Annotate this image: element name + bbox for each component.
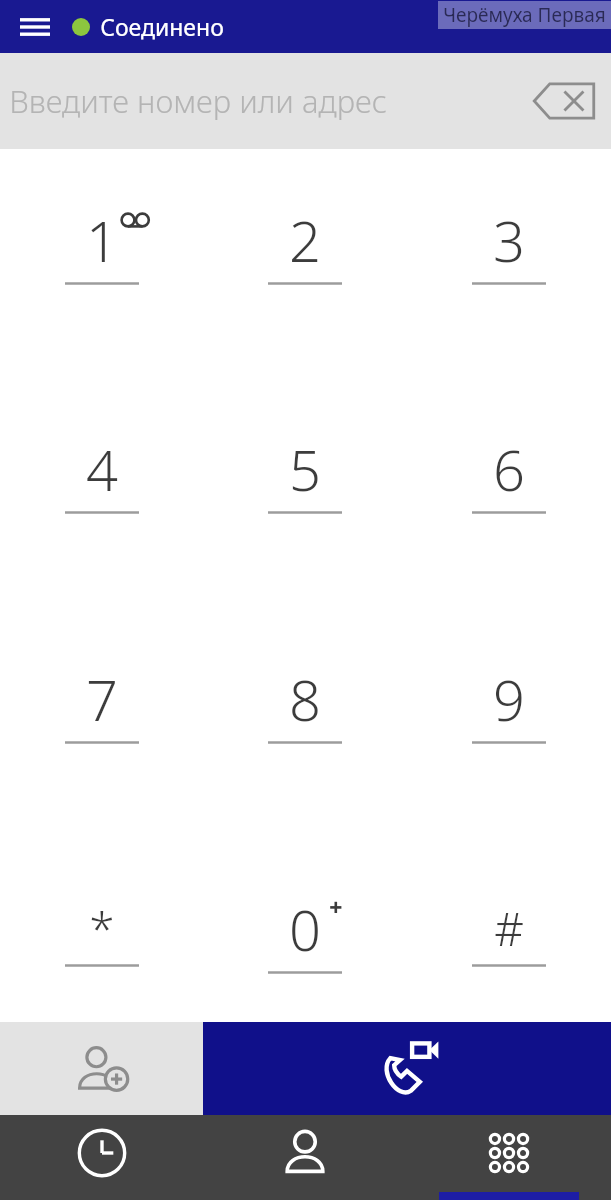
button[interactable]: 5	[203, 420, 407, 524]
staticText: 0	[289, 891, 321, 967]
button[interactable]: Backspace	[523, 70, 605, 132]
staticText: 5	[289, 431, 321, 507]
staticText: Соединено	[100, 11, 224, 42]
button[interactable]: 4	[0, 420, 203, 524]
button[interactable]: 8	[203, 650, 407, 754]
staticText: *	[89, 897, 115, 960]
button[interactable]: 3	[407, 191, 611, 295]
button[interactable]: Contacts	[203, 1115, 407, 1200]
button[interactable]: Video call	[203, 1022, 611, 1115]
button[interactable]: 6	[407, 420, 611, 524]
staticText: Черёмуха Первая	[443, 2, 606, 28]
staticText: 1	[86, 202, 118, 278]
staticText: 2	[289, 202, 321, 278]
button[interactable]: *	[0, 880, 203, 984]
button[interactable]: 7	[0, 650, 203, 754]
button[interactable]: Dialpad	[407, 1115, 611, 1200]
button[interactable]: 0	[203, 880, 407, 984]
button[interactable]: 9	[407, 650, 611, 754]
staticText: #	[494, 897, 524, 960]
button[interactable]: 1	[0, 191, 203, 295]
staticText: 7	[86, 661, 118, 737]
staticText: 4	[86, 431, 118, 507]
staticText: 8	[289, 661, 321, 737]
staticText: 3	[493, 202, 525, 278]
staticText: 6	[493, 431, 525, 507]
staticText: 9	[493, 661, 525, 737]
button[interactable]: Call log	[0, 1115, 203, 1200]
staticText: Введите номер или адрес	[9, 80, 387, 122]
button[interactable]: 2	[203, 191, 407, 295]
button[interactable]: #	[407, 880, 611, 984]
button[interactable]: Add contact	[0, 1022, 203, 1115]
button[interactable]: Menu	[10, 2, 60, 52]
